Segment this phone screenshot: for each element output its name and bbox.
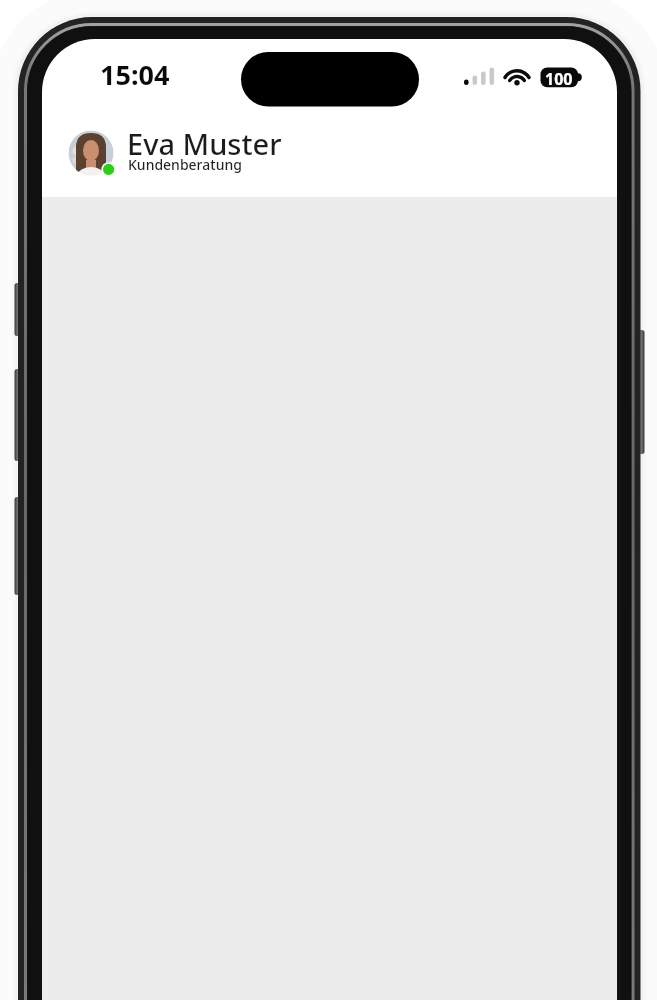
staticText: 100 <box>545 68 573 90</box>
staticText: Kundenberatung <box>128 155 242 174</box>
staticText: Eva Muster <box>127 124 282 163</box>
button[interactable]: Eva Muster <box>68 127 328 179</box>
staticText: 15:04 <box>100 56 170 93</box>
